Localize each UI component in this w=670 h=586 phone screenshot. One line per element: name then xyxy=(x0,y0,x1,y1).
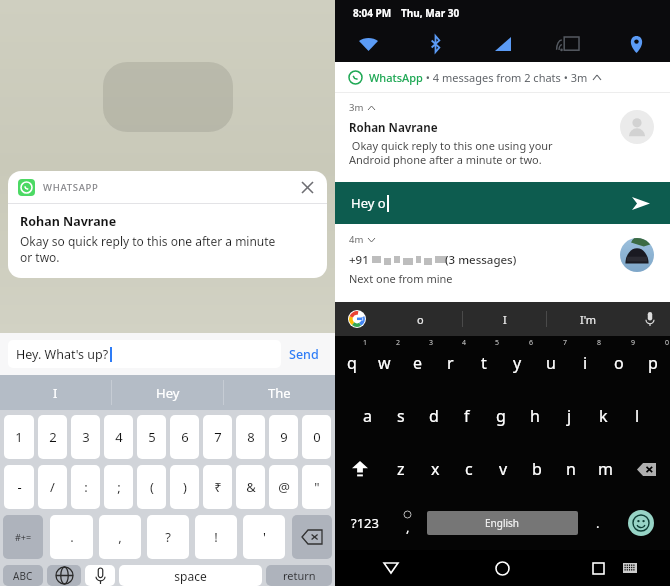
button[interactable]: return xyxy=(266,565,332,586)
button[interactable]: e xyxy=(401,336,434,389)
staticText: 8 xyxy=(597,338,602,348)
button[interactable]: o xyxy=(602,336,636,389)
staticText: 5 xyxy=(495,338,500,348)
button[interactable]: The xyxy=(224,375,335,410)
button[interactable]: Backspace xyxy=(622,442,670,496)
button[interactable]: " xyxy=(302,465,331,509)
staticText: return xyxy=(283,568,316,583)
button[interactable]: ABC xyxy=(3,565,43,586)
button[interactable]: I xyxy=(0,375,111,410)
staticText: 0 xyxy=(313,428,321,446)
button[interactable]: & xyxy=(236,465,265,509)
button[interactable]: ' xyxy=(243,515,285,559)
button[interactable]: Emoji xyxy=(615,496,666,550)
button[interactable]: Shift xyxy=(335,442,384,496)
button[interactable]: t xyxy=(467,336,500,389)
button[interactable]: space xyxy=(119,565,262,586)
button[interactable]: 3m xyxy=(335,92,670,182)
button[interactable]: 5 xyxy=(137,415,166,459)
button[interactable]: 2 xyxy=(38,415,67,459)
button[interactable]: z xyxy=(384,442,418,496)
staticText: 3 xyxy=(82,428,90,446)
button[interactable]: Voice input xyxy=(630,302,670,336)
button[interactable]: m xyxy=(588,442,622,496)
button[interactable]: h xyxy=(518,389,552,442)
button[interactable]: ₹ xyxy=(203,465,232,509)
button[interactable]: Back xyxy=(335,550,446,586)
button[interactable]: #+= xyxy=(3,515,43,559)
button[interactable]: l xyxy=(620,389,654,442)
button[interactable]: . xyxy=(581,496,615,550)
button[interactable]: Backspace xyxy=(292,515,332,559)
button[interactable]: I xyxy=(463,302,546,336)
button[interactable]: Recent apps xyxy=(585,555,611,581)
button[interactable]: WHATSAPP xyxy=(8,171,327,278)
button[interactable]: c xyxy=(452,442,486,496)
button[interactable]: Send xyxy=(281,340,327,369)
button[interactable]: Send reply xyxy=(628,190,654,216)
button[interactable]: d xyxy=(417,389,450,442)
button[interactable]: f xyxy=(450,389,484,442)
button[interactable]: p xyxy=(636,336,670,389)
button[interactable]: v xyxy=(486,442,520,496)
button[interactable]: English xyxy=(427,511,578,535)
staticText: ABC xyxy=(13,569,33,583)
button[interactable]: 4 xyxy=(104,415,133,459)
staticText: - xyxy=(17,478,22,496)
button[interactable]: 0 xyxy=(302,415,331,459)
staticText: #+= xyxy=(15,531,32,543)
staticText: 6 xyxy=(529,338,534,348)
staticText: 1 xyxy=(15,428,23,446)
button[interactable]: Voice input xyxy=(85,565,115,586)
button[interactable]: Google search xyxy=(335,302,379,336)
button[interactable]: 7 xyxy=(203,415,232,459)
button[interactable]: - xyxy=(4,465,34,509)
button[interactable]: : xyxy=(71,465,100,509)
button[interactable]: s xyxy=(384,389,417,442)
staticText: o xyxy=(614,352,624,374)
button[interactable]: . xyxy=(50,515,93,559)
button[interactable]: ! xyxy=(195,515,237,559)
button[interactable]: x xyxy=(418,442,452,496)
button[interactable]: ? xyxy=(147,515,189,559)
button[interactable]: WhatsApp xyxy=(335,62,670,92)
button[interactable]: Home xyxy=(446,550,558,586)
button[interactable]: ?123 xyxy=(339,496,390,550)
button[interactable]: k xyxy=(586,389,620,442)
button[interactable]: Switch keyboard xyxy=(617,555,643,581)
button[interactable]: a xyxy=(351,389,384,442)
button[interactable]: n xyxy=(554,442,588,496)
staticText: 4 xyxy=(462,338,467,348)
button[interactable]: / xyxy=(38,465,67,509)
button[interactable]: @ xyxy=(269,465,298,509)
button[interactable]: I'm xyxy=(547,302,630,336)
button[interactable]: Dismiss notification xyxy=(297,177,317,197)
button[interactable]: 9 xyxy=(269,415,298,459)
button[interactable]: Hey. What's up? xyxy=(8,340,281,368)
button[interactable]: i xyxy=(568,336,602,389)
button[interactable]: j xyxy=(552,389,586,442)
button[interactable]: g xyxy=(484,389,518,442)
staticText: ! xyxy=(214,528,218,546)
button[interactable]: Hey o xyxy=(335,182,670,224)
button[interactable]: , xyxy=(99,515,141,559)
button[interactable]: y xyxy=(500,336,534,389)
button[interactable]: o xyxy=(379,302,462,336)
button[interactable]: , xyxy=(390,496,424,550)
button[interactable]: 3 xyxy=(71,415,100,459)
button[interactable]: 6 xyxy=(170,415,199,459)
button[interactable]: ; xyxy=(104,465,133,509)
button[interactable]: q xyxy=(335,336,368,389)
button[interactable]: u xyxy=(534,336,568,389)
button[interactable]: ) xyxy=(170,465,199,509)
button[interactable]: 8 xyxy=(236,415,265,459)
button[interactable]: b xyxy=(520,442,554,496)
button[interactable]: 4m xyxy=(335,224,670,302)
button[interactable]: ( xyxy=(137,465,166,509)
button[interactable]: w xyxy=(368,336,401,389)
button[interactable]: Change keyboard language xyxy=(47,565,81,586)
staticText: ) xyxy=(183,478,187,496)
button[interactable]: r xyxy=(434,336,467,389)
button[interactable]: Hey xyxy=(112,375,223,410)
button[interactable]: 1 xyxy=(4,415,34,459)
